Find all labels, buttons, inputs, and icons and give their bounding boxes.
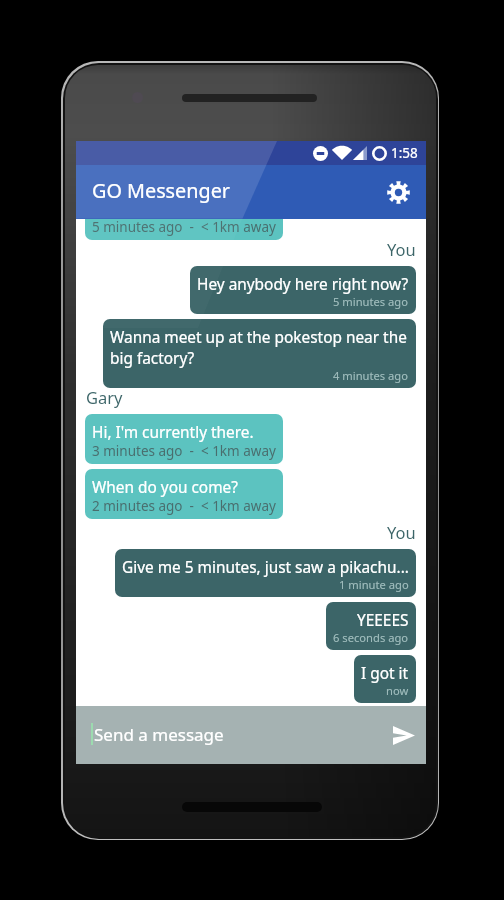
staticText: 5 minutes ago bbox=[333, 295, 409, 309]
staticText: You bbox=[387, 523, 416, 544]
button[interactable]: Settings bbox=[380, 174, 416, 210]
button[interactable]: Send bbox=[393, 719, 415, 751]
staticText: GO Messenger bbox=[92, 179, 231, 203]
staticText: Gary bbox=[86, 388, 123, 409]
button[interactable]: Wanna meet up at the pokestop near the b… bbox=[103, 319, 416, 388]
button[interactable]: Give me 5 minutes, just saw a pikachu... bbox=[115, 549, 416, 597]
staticText: Hey anybody here right now? bbox=[197, 274, 409, 295]
button[interactable]: YEEEES bbox=[326, 602, 416, 650]
staticText: Send a message bbox=[94, 725, 393, 746]
staticText: 1 minute ago bbox=[339, 578, 409, 592]
staticText: 3 minutes ago - < 1km away bbox=[92, 443, 276, 460]
staticText: Give me 5 minutes, just saw a pikachu... bbox=[122, 557, 409, 578]
staticText: YEEEES bbox=[357, 610, 409, 631]
staticText: 6 seconds ago bbox=[333, 631, 409, 645]
staticText: You bbox=[387, 240, 416, 261]
button[interactable]: When do you come? bbox=[85, 469, 283, 519]
staticText: 2 minutes ago - < 1km away bbox=[92, 498, 276, 515]
staticText: 5 minutes ago - < 1km away bbox=[92, 219, 276, 236]
button[interactable]: Hi, I'm currently there. bbox=[85, 414, 283, 464]
staticText: Wanna meet up at the pokestop near the b… bbox=[110, 327, 409, 369]
staticText: now bbox=[386, 684, 409, 698]
staticText: 4 minutes ago bbox=[333, 369, 409, 383]
button[interactable]: I got it bbox=[354, 655, 416, 703]
button[interactable]: Hey anybody here right now? bbox=[190, 266, 416, 314]
other: Do not disturb bbox=[313, 146, 328, 161]
button[interactable]: When do you come? bbox=[85, 219, 283, 240]
staticText: When do you come? bbox=[92, 477, 238, 498]
staticText: 1:58 bbox=[391, 145, 418, 161]
staticText: Hi, I'm currently there. bbox=[92, 422, 254, 443]
staticText: I got it bbox=[361, 663, 409, 684]
